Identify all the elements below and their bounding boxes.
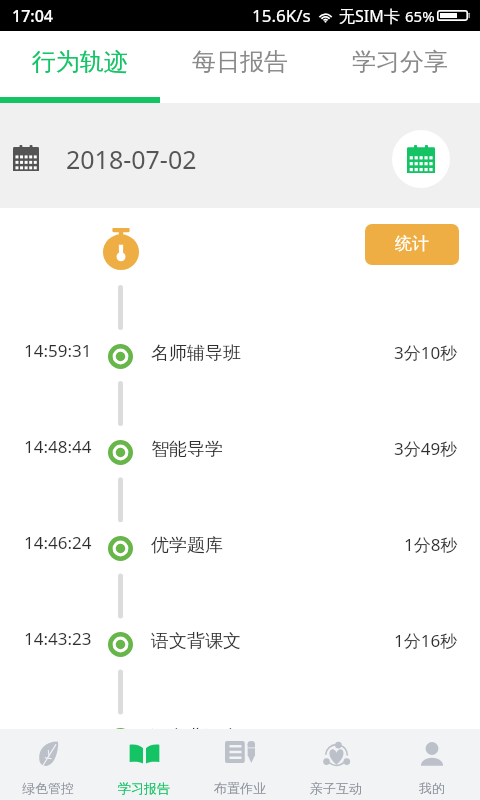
- staticText: 亲子互动: [310, 780, 362, 796]
- button[interactable]: 我的: [384, 729, 480, 800]
- staticText: 3分49秒: [394, 437, 458, 460]
- staticText: 学习报告: [118, 780, 170, 796]
- button[interactable]: 行为轨迹: [0, 31, 160, 92]
- staticText: 14:48:44: [24, 435, 92, 458]
- staticText: 无SIM卡: [339, 5, 400, 27]
- staticText: 智能导学: [151, 438, 223, 461]
- button[interactable]: 布置作业: [192, 729, 288, 800]
- staticText: 我的: [419, 780, 445, 796]
- staticText: 14:43:23: [24, 627, 92, 650]
- staticText: 14:59:31: [24, 339, 92, 362]
- button[interactable]: 14:48:44: [0, 404, 480, 500]
- staticText: 语文背课文: [151, 726, 241, 749]
- button[interactable]: 14:59:31: [0, 308, 480, 404]
- button[interactable]: Pick date: [392, 130, 450, 188]
- staticText: 14:46:24: [24, 531, 92, 554]
- button[interactable]: 学习报告: [96, 729, 192, 800]
- staticText: 语文背课文: [151, 630, 241, 653]
- staticText: 17:04: [12, 5, 53, 27]
- button[interactable]: 14:41:57: [0, 692, 480, 788]
- staticText: 每日报告: [192, 47, 288, 77]
- button[interactable]: 亲子互动: [288, 729, 384, 800]
- staticText: 优学题库: [151, 534, 223, 557]
- staticText: 学习分享: [352, 47, 448, 77]
- staticText: 行为轨迹: [32, 47, 128, 77]
- staticText: 名师辅导班: [151, 342, 241, 365]
- button[interactable]: 绿色管控: [0, 729, 96, 800]
- staticText: 14:41:57: [24, 723, 92, 746]
- staticText: 1分16秒: [394, 629, 458, 652]
- staticText: 布置作业: [214, 780, 266, 796]
- staticText: 3分10秒: [394, 341, 458, 364]
- button[interactable]: 统计: [365, 224, 459, 265]
- button[interactable]: 学习分享: [320, 31, 480, 92]
- button[interactable]: 每日报告: [160, 31, 320, 92]
- staticText: 统计: [395, 233, 429, 254]
- staticText: 15.6K/s: [252, 4, 311, 27]
- button[interactable]: 14:46:24: [0, 500, 480, 596]
- staticText: 1分8秒: [404, 533, 458, 556]
- staticText: 1分20秒: [394, 725, 458, 748]
- button[interactable]: 14:43:23: [0, 596, 480, 692]
- staticText: 2018-07-02: [66, 142, 197, 176]
- staticText: 65%: [405, 6, 435, 26]
- staticText: 绿色管控: [22, 780, 74, 796]
